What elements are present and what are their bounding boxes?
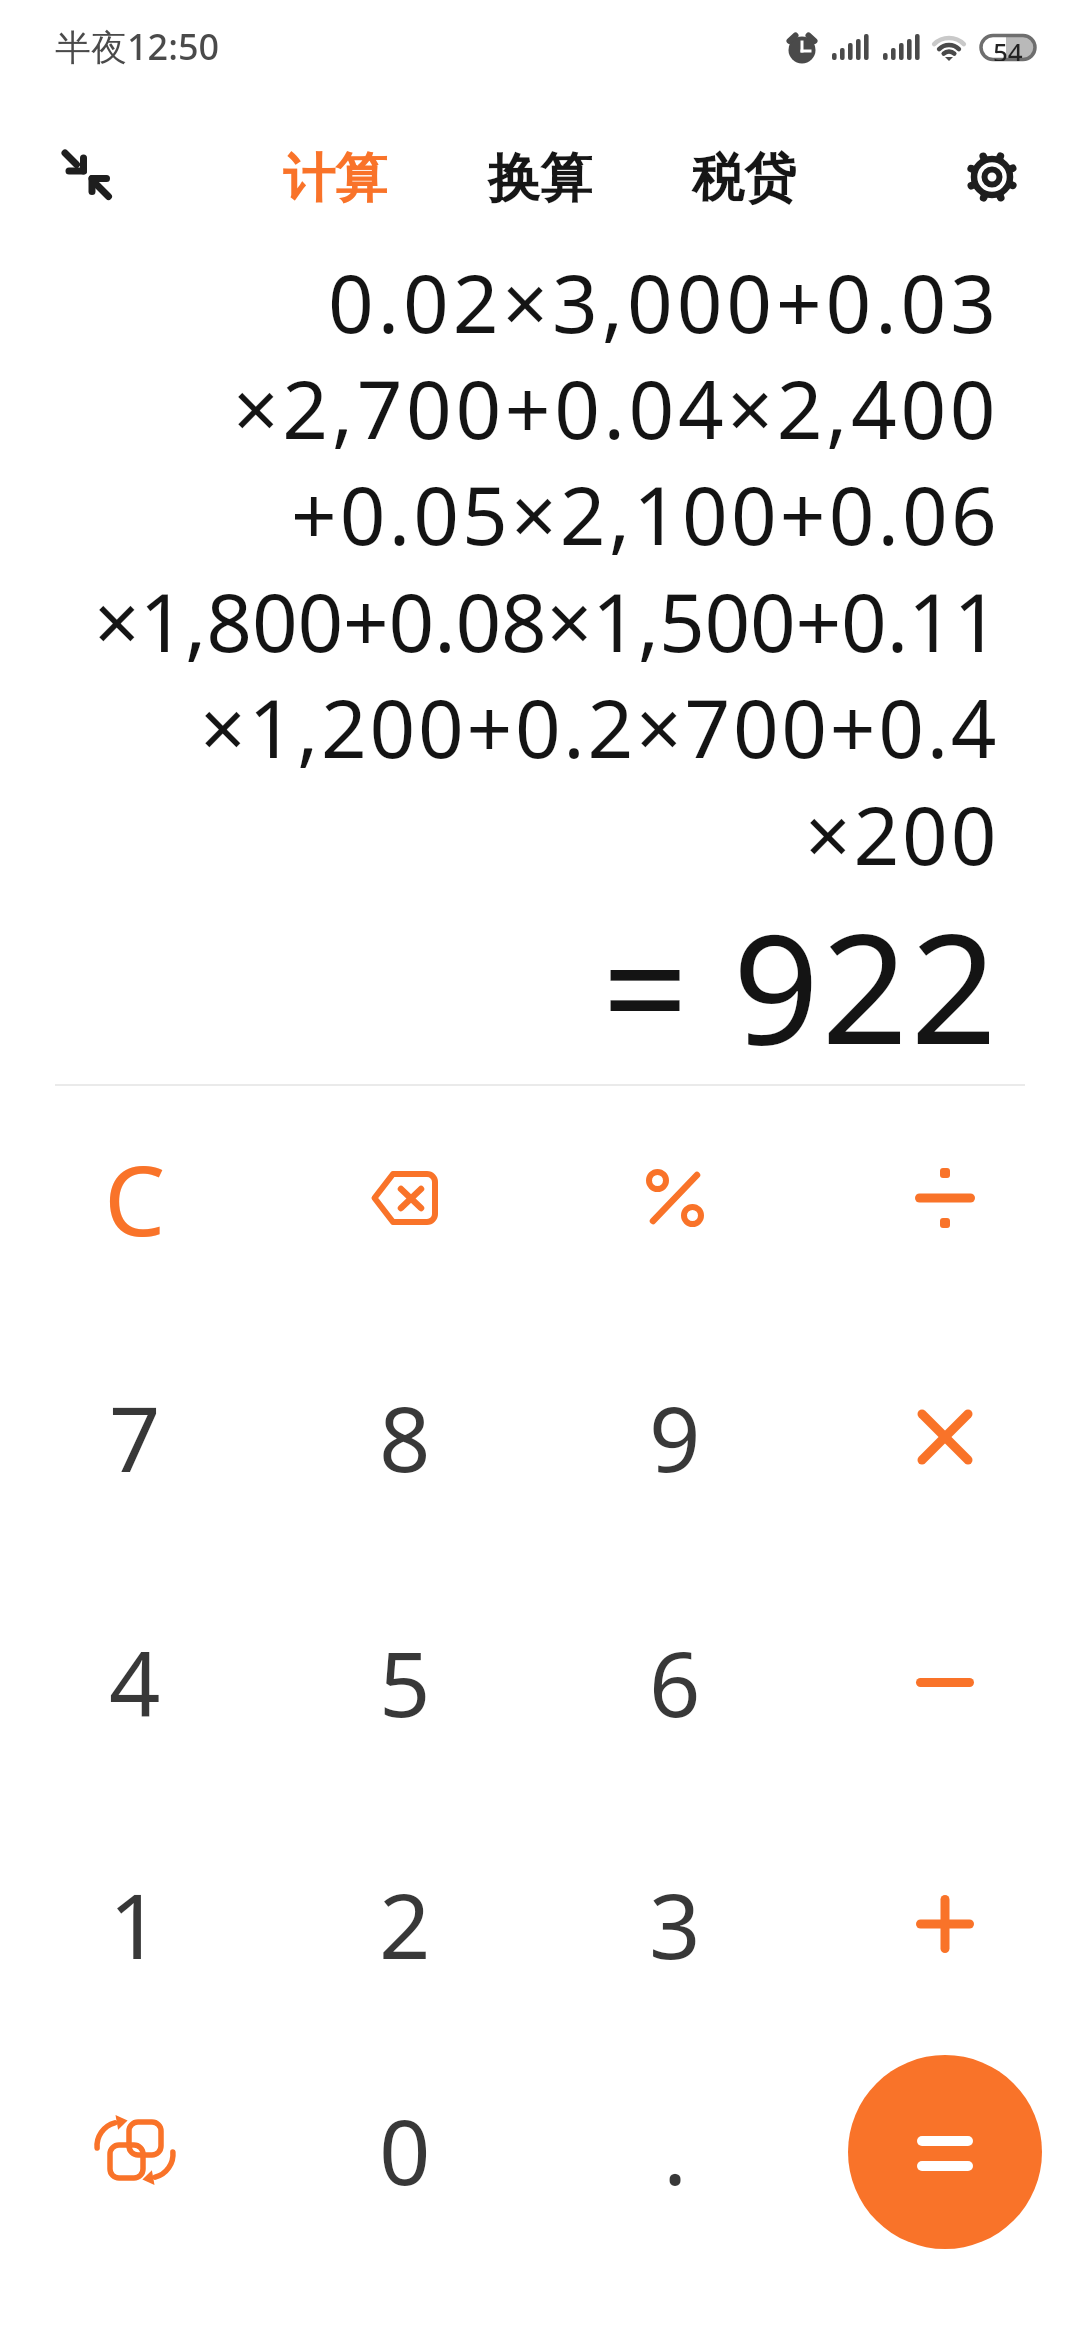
button[interactable]: 0	[315, 2060, 495, 2240]
button[interactable]: 9	[585, 1347, 765, 1527]
button[interactable]: 5	[315, 1592, 495, 1772]
staticText: 0	[379, 2089, 431, 2212]
button[interactable]: 8	[315, 1347, 495, 1527]
staticText: 54	[993, 34, 1023, 61]
button[interactable]	[585, 1108, 765, 1288]
button[interactable]: 换算	[440, 139, 640, 219]
staticText: 6	[649, 1621, 701, 1744]
button[interactable]: 4	[45, 1592, 225, 1772]
button[interactable]	[855, 1834, 1035, 2014]
staticText: 0.02×3,000+0.03	[328, 247, 1000, 352]
staticText: 半夜12:50	[55, 22, 220, 70]
button[interactable]: 7	[45, 1347, 225, 1527]
staticText: ×200	[805, 779, 1000, 884]
staticText: 4	[109, 1621, 161, 1744]
button[interactable]	[855, 1108, 1035, 1288]
button[interactable]: C	[45, 1108, 225, 1288]
staticText: ×1,800+0.08×1,500+0.11	[94, 566, 1000, 671]
staticText: +0.05×2,100+0.06	[291, 459, 1000, 564]
staticText: 9	[649, 1376, 701, 1499]
staticText: 5	[379, 1621, 431, 1744]
button[interactable]: .	[585, 2060, 765, 2240]
button[interactable]	[45, 2060, 225, 2240]
button[interactable]: 3	[585, 1834, 765, 2014]
staticText: C	[104, 1132, 166, 1264]
button[interactable]	[48, 137, 128, 217]
button[interactable]	[952, 137, 1032, 217]
staticText: 换算	[488, 146, 592, 212]
staticText: 2	[379, 1863, 431, 1986]
button[interactable]: 计算	[235, 139, 435, 219]
button[interactable]	[848, 2055, 1042, 2249]
staticText: = 922	[602, 883, 1000, 1073]
button[interactable]: 税贷	[644, 139, 844, 219]
staticText: 税贷	[692, 146, 796, 212]
button[interactable]	[855, 1592, 1035, 1772]
staticText: 计算	[283, 146, 387, 212]
button[interactable]: 1	[45, 1834, 225, 2014]
staticText: 1	[109, 1863, 161, 1986]
staticText: ×1,200+0.2×700+0.4	[200, 672, 1000, 777]
staticText: 7	[109, 1376, 161, 1499]
button[interactable]: 6	[585, 1592, 765, 1772]
button[interactable]	[315, 1108, 495, 1288]
staticText: 3	[649, 1863, 701, 1986]
staticText: 8	[379, 1376, 431, 1499]
staticText: ×2,700+0.04×2,400	[233, 353, 1000, 458]
staticText: .	[663, 2089, 688, 2212]
button[interactable]: 2	[315, 1834, 495, 2014]
button[interactable]	[855, 1347, 1035, 1527]
